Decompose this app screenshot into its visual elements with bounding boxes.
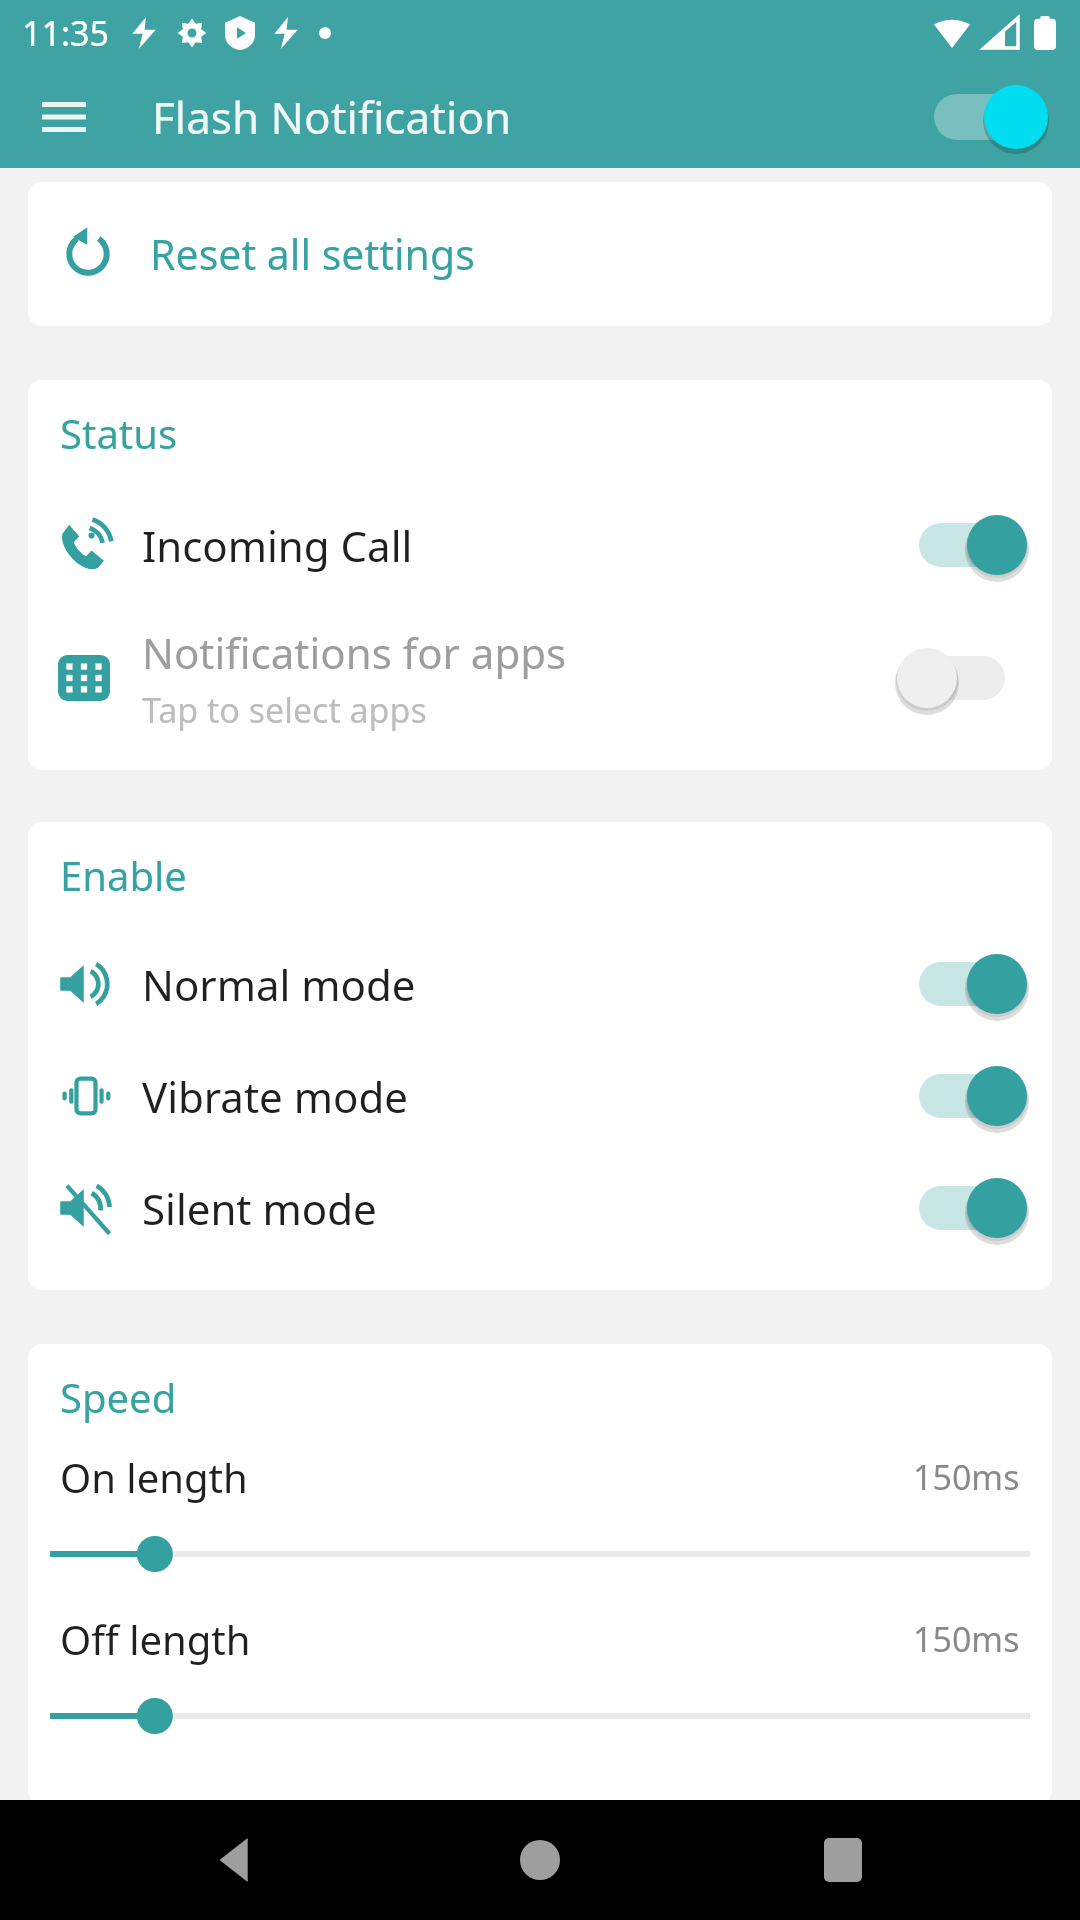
button[interactable]: Vibrate mode [28,1040,1052,1152]
staticText: Vibrate mode [142,1068,900,1125]
button[interactable]: Normal mode [28,928,1052,1040]
staticText: Off length [60,1612,913,1666]
button[interactable]: Reset all settings [28,182,1052,326]
button[interactable]: Open navigation menu [28,81,100,153]
staticText: Normal mode [142,956,900,1013]
staticText: Flash Notification [152,87,512,147]
staticText: On length [60,1450,913,1504]
button[interactable]: Incoming Call [28,486,1052,604]
button[interactable]: Silent mode [28,1152,1052,1264]
staticText: Reset all settings [150,226,475,282]
staticText: 11:35 [22,10,109,56]
button[interactable]: Toggle on [900,503,1024,587]
button[interactable]: Toggle on [900,942,1024,1026]
button[interactable]: Toggle on [900,1054,1024,1138]
staticText: Tap to select apps [142,687,427,733]
button[interactable]: Notifications for apps [28,604,1052,752]
button[interactable]: On length slider [50,1526,1030,1582]
staticText: Enable [60,848,187,902]
staticText: Notifications for apps [142,624,567,681]
button[interactable]: Toggle off [900,636,1024,720]
staticText: Speed [60,1370,177,1424]
button[interactable]: Toggle on [900,1166,1024,1250]
button[interactable]: Off length slider [50,1688,1030,1744]
staticText: Status [60,406,178,460]
button[interactable]: Home [475,1800,605,1920]
staticText: 150ms [913,1616,1020,1662]
button[interactable]: Back [173,1800,303,1920]
staticText: Silent mode [142,1180,900,1237]
staticText: 150ms [913,1454,1020,1500]
button[interactable]: Enable flash notification [918,72,1058,162]
staticText: Incoming Call [142,517,900,574]
button[interactable]: Recent apps [778,1800,908,1920]
